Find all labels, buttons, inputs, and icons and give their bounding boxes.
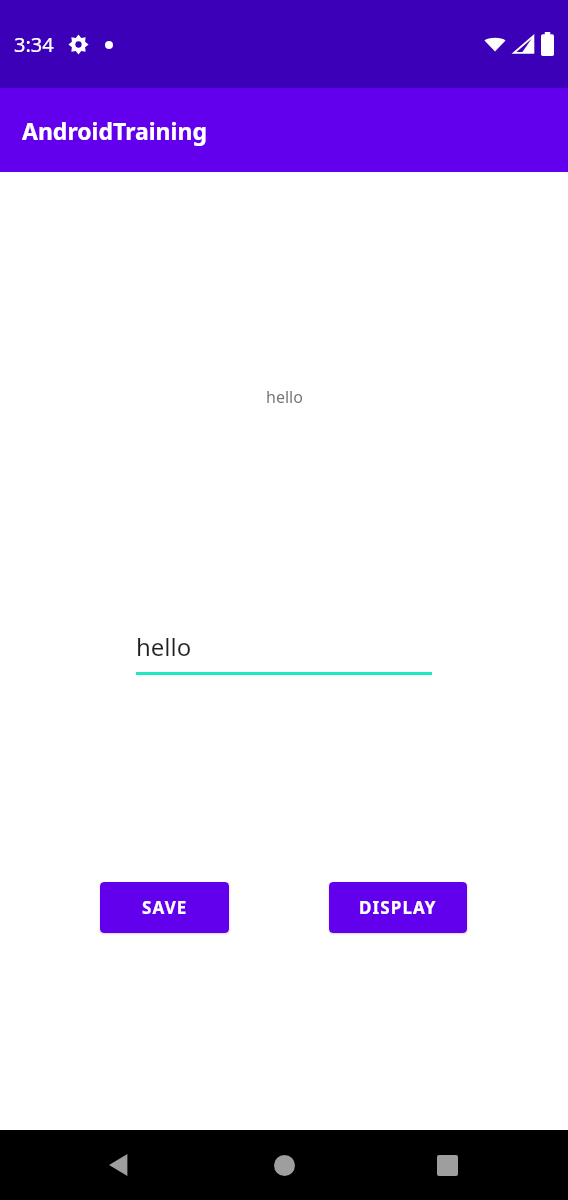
- staticText: hello: [136, 630, 192, 663]
- button[interactable]: Home: [264, 1145, 304, 1185]
- staticText: 3:34: [14, 31, 54, 58]
- button[interactable]: Back: [99, 1145, 139, 1185]
- staticText: DISPLAY: [359, 896, 437, 919]
- button[interactable]: hello: [136, 630, 432, 675]
- button[interactable]: Recent apps: [427, 1145, 467, 1185]
- staticText: hello: [266, 386, 303, 408]
- staticText: AndroidTraining: [22, 115, 207, 146]
- button[interactable]: DISPLAY: [329, 882, 467, 933]
- button[interactable]: SAVE: [100, 882, 229, 933]
- staticText: SAVE: [142, 896, 188, 919]
